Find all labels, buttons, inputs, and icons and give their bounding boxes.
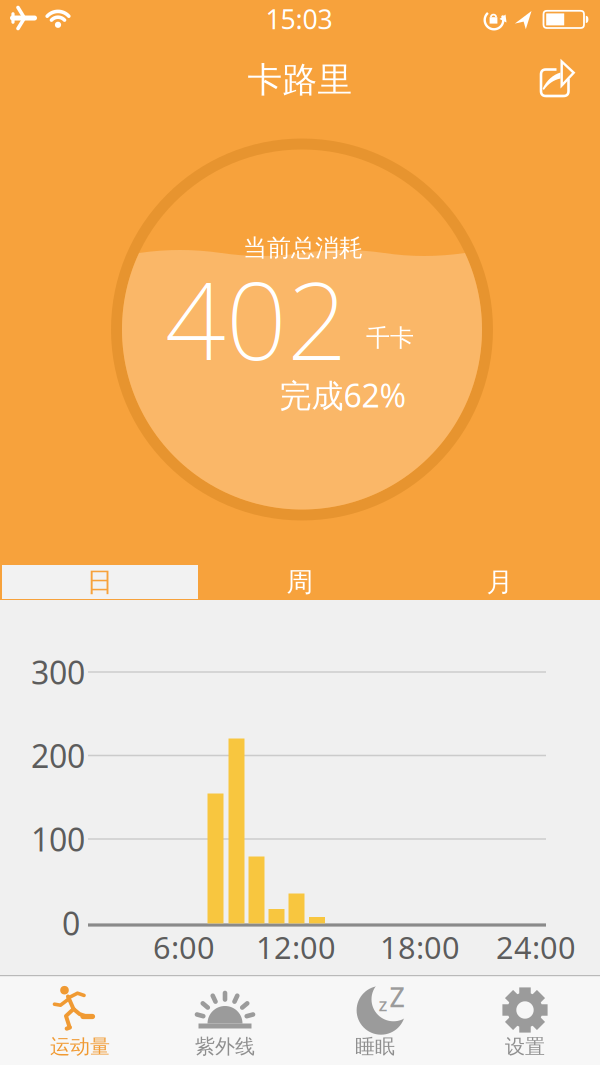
staticText: 24:00 — [496, 927, 576, 967]
staticText: 日 — [86, 566, 113, 598]
staticText: 18:00 — [380, 927, 460, 967]
staticText: 300 — [31, 651, 85, 693]
button[interactable]: 运动量 — [0, 976, 150, 1065]
staticText: 100 — [31, 818, 85, 860]
staticText: 紫外线 — [195, 1034, 255, 1059]
button[interactable]: 紫外线 — [150, 976, 300, 1065]
staticText: 卡路里 — [247, 59, 352, 101]
button[interactable]: 设置 — [450, 976, 600, 1065]
button[interactable]: Share — [524, 52, 584, 112]
staticText: 200 — [31, 734, 85, 777]
staticText: 睡眠 — [355, 1034, 395, 1059]
staticText: z — [378, 992, 387, 1016]
button[interactable]: 日 — [0, 563, 200, 601]
staticText: 当前总消耗 — [243, 233, 363, 263]
staticText: 月 — [486, 566, 513, 598]
staticText: Z — [389, 979, 404, 1015]
staticText: 6:00 — [153, 927, 215, 967]
button[interactable]: 周 — [200, 563, 400, 601]
button[interactable]: z — [300, 976, 450, 1065]
button[interactable]: 月 — [400, 563, 600, 601]
staticText: 周 — [286, 566, 313, 598]
staticText: 完成62% — [279, 374, 406, 416]
staticText: 运动量 — [50, 1034, 110, 1059]
staticText: 402 — [165, 248, 348, 389]
staticText: 15:03 — [265, 1, 332, 37]
staticText: 0 — [62, 902, 80, 944]
staticText: 千卡 — [366, 323, 414, 353]
staticText: 设置 — [505, 1034, 545, 1059]
staticText: 12:00 — [256, 927, 336, 967]
